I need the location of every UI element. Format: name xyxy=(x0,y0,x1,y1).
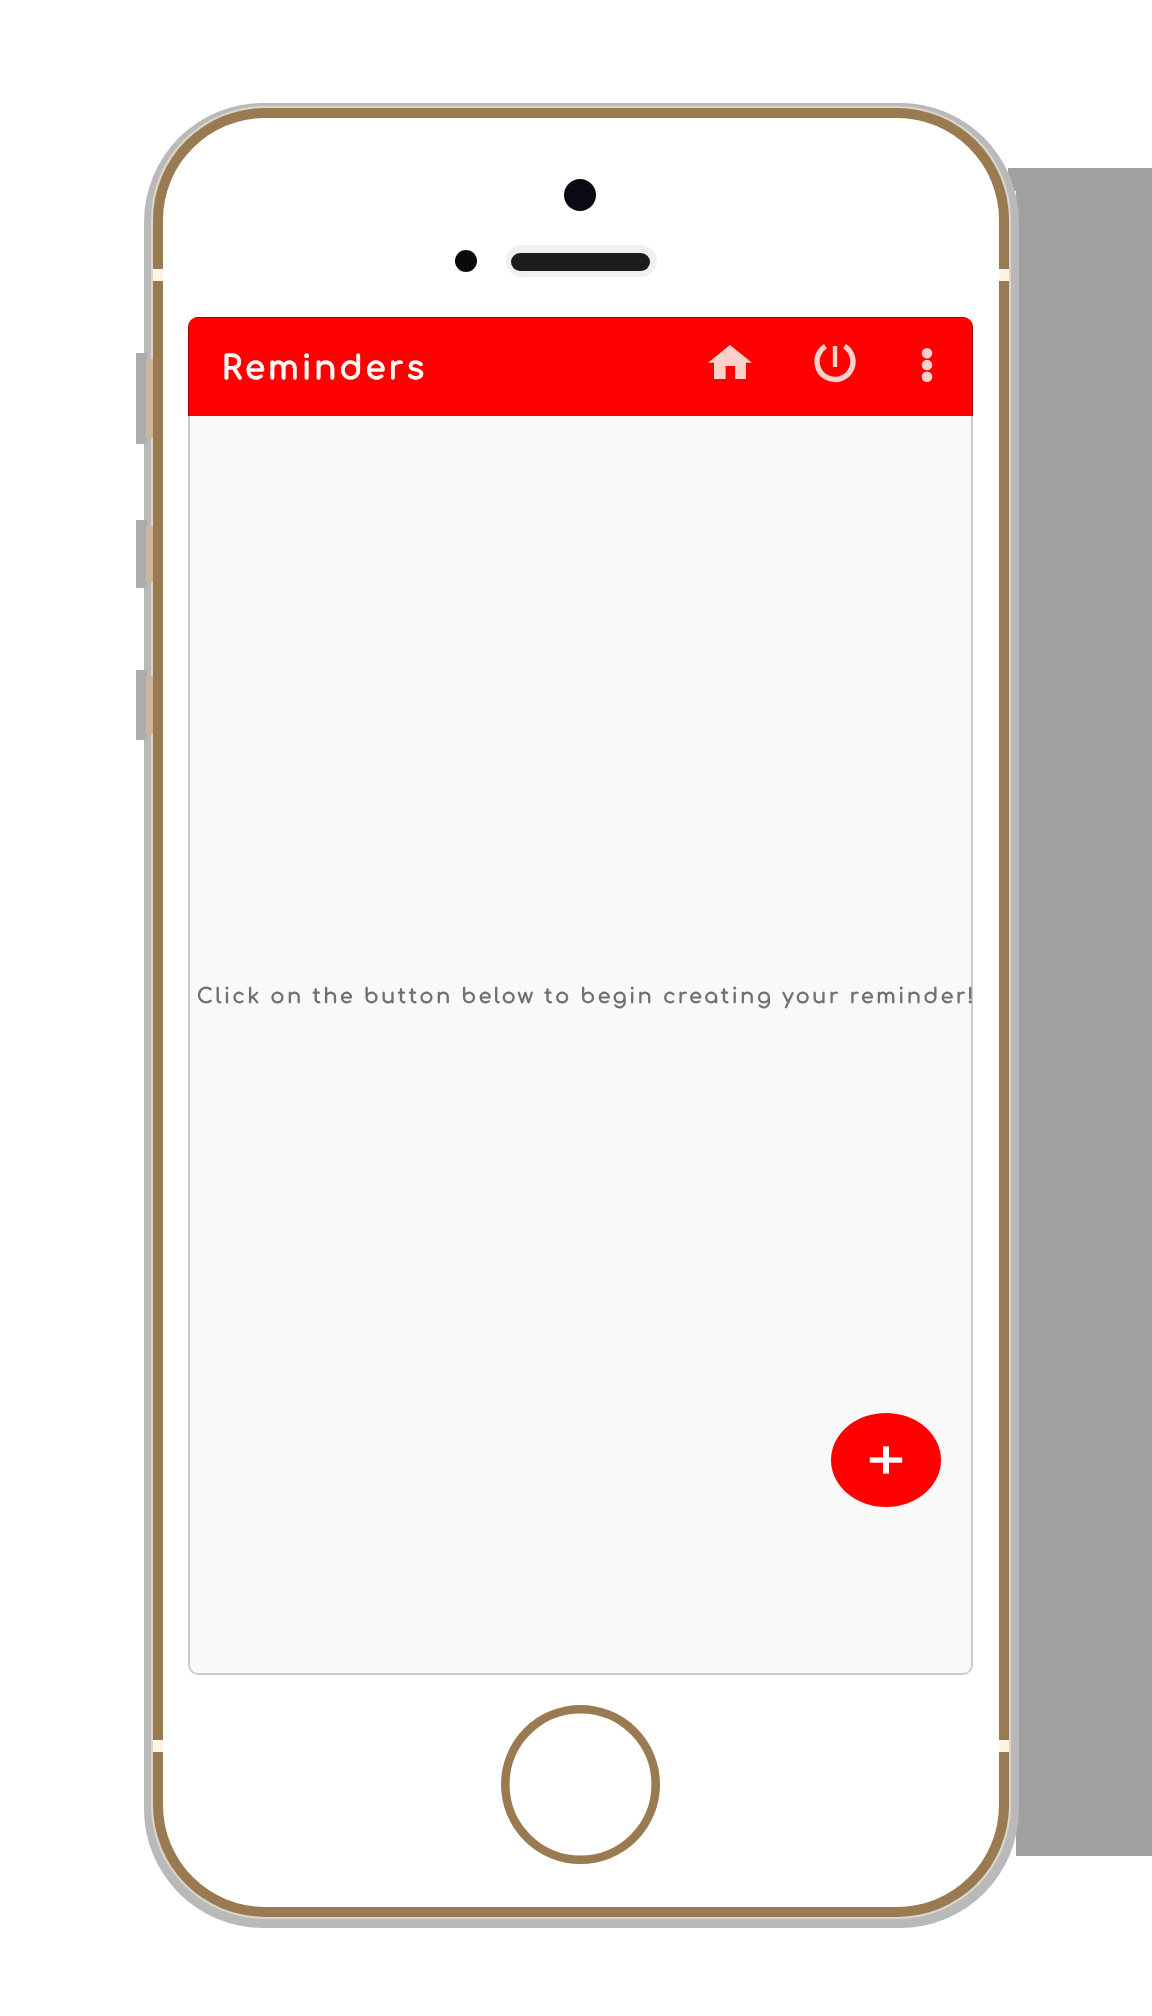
button[interactable]: Add reminder xyxy=(831,1413,941,1507)
button[interactable]: More options xyxy=(890,318,964,411)
button[interactable]: Home xyxy=(693,317,767,408)
staticText: Reminders xyxy=(222,351,428,387)
button[interactable]: Power xyxy=(798,317,872,410)
staticText: Click on the button below to begin creat… xyxy=(197,985,973,1008)
